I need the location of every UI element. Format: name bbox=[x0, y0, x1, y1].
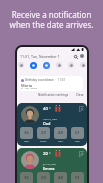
staticText: 36 bbox=[24, 130, 29, 136]
button[interactable]: Quick setting bbox=[43, 62, 50, 69]
staticText: Dad bbox=[43, 121, 51, 126]
staticText: 51 bbox=[75, 130, 80, 136]
button[interactable]: Quick setting bbox=[56, 62, 62, 68]
button[interactable]: Search bbox=[73, 54, 78, 59]
staticText: 51 bbox=[75, 175, 80, 181]
staticText: 29 bbox=[41, 175, 46, 181]
staticText: Secs bbox=[75, 140, 80, 143]
staticText: NOV 13, 2023 bbox=[43, 118, 57, 121]
staticText: 20 bbox=[43, 151, 48, 157]
staticText: Maria bbox=[21, 83, 33, 88]
staticText: 11:31, Tue, November 1 bbox=[20, 54, 60, 59]
staticText: 40 bbox=[43, 106, 48, 112]
button[interactable]: Notification settings bbox=[38, 93, 69, 97]
staticText: Mins bbox=[58, 140, 63, 143]
staticText: JUN 02, 2023 bbox=[43, 163, 57, 166]
staticText: ° bbox=[49, 106, 51, 111]
staticText: 29 bbox=[41, 130, 46, 136]
staticText: Days bbox=[24, 140, 29, 143]
staticText: Fri 30, 2023 bbox=[21, 88, 38, 89]
staticText: 48 bbox=[58, 130, 63, 136]
staticText: Emma bbox=[43, 166, 55, 171]
staticText: ° bbox=[49, 151, 51, 156]
staticText: 36 bbox=[24, 175, 29, 181]
staticText: Receive a notification when the date arr… bbox=[2, 9, 101, 30]
button[interactable]: Settings bbox=[80, 54, 84, 58]
button[interactable]: Quick setting bbox=[80, 62, 86, 68]
button[interactable]: Quick setting bbox=[68, 62, 74, 68]
staticText: Hours bbox=[40, 140, 47, 143]
button[interactable]: 20 bbox=[17, 148, 87, 183]
staticText: 48 bbox=[58, 175, 63, 181]
button[interactable]: Clear bbox=[76, 93, 84, 97]
button[interactable]: Quick setting bbox=[30, 62, 37, 69]
button[interactable]: 40 bbox=[17, 103, 87, 146]
staticText: Birthday countdown · 11:31 bbox=[25, 78, 66, 82]
button[interactable]: Quick setting bbox=[18, 62, 24, 68]
button[interactable]: Birthday countdown · 11:31 bbox=[19, 76, 83, 91]
